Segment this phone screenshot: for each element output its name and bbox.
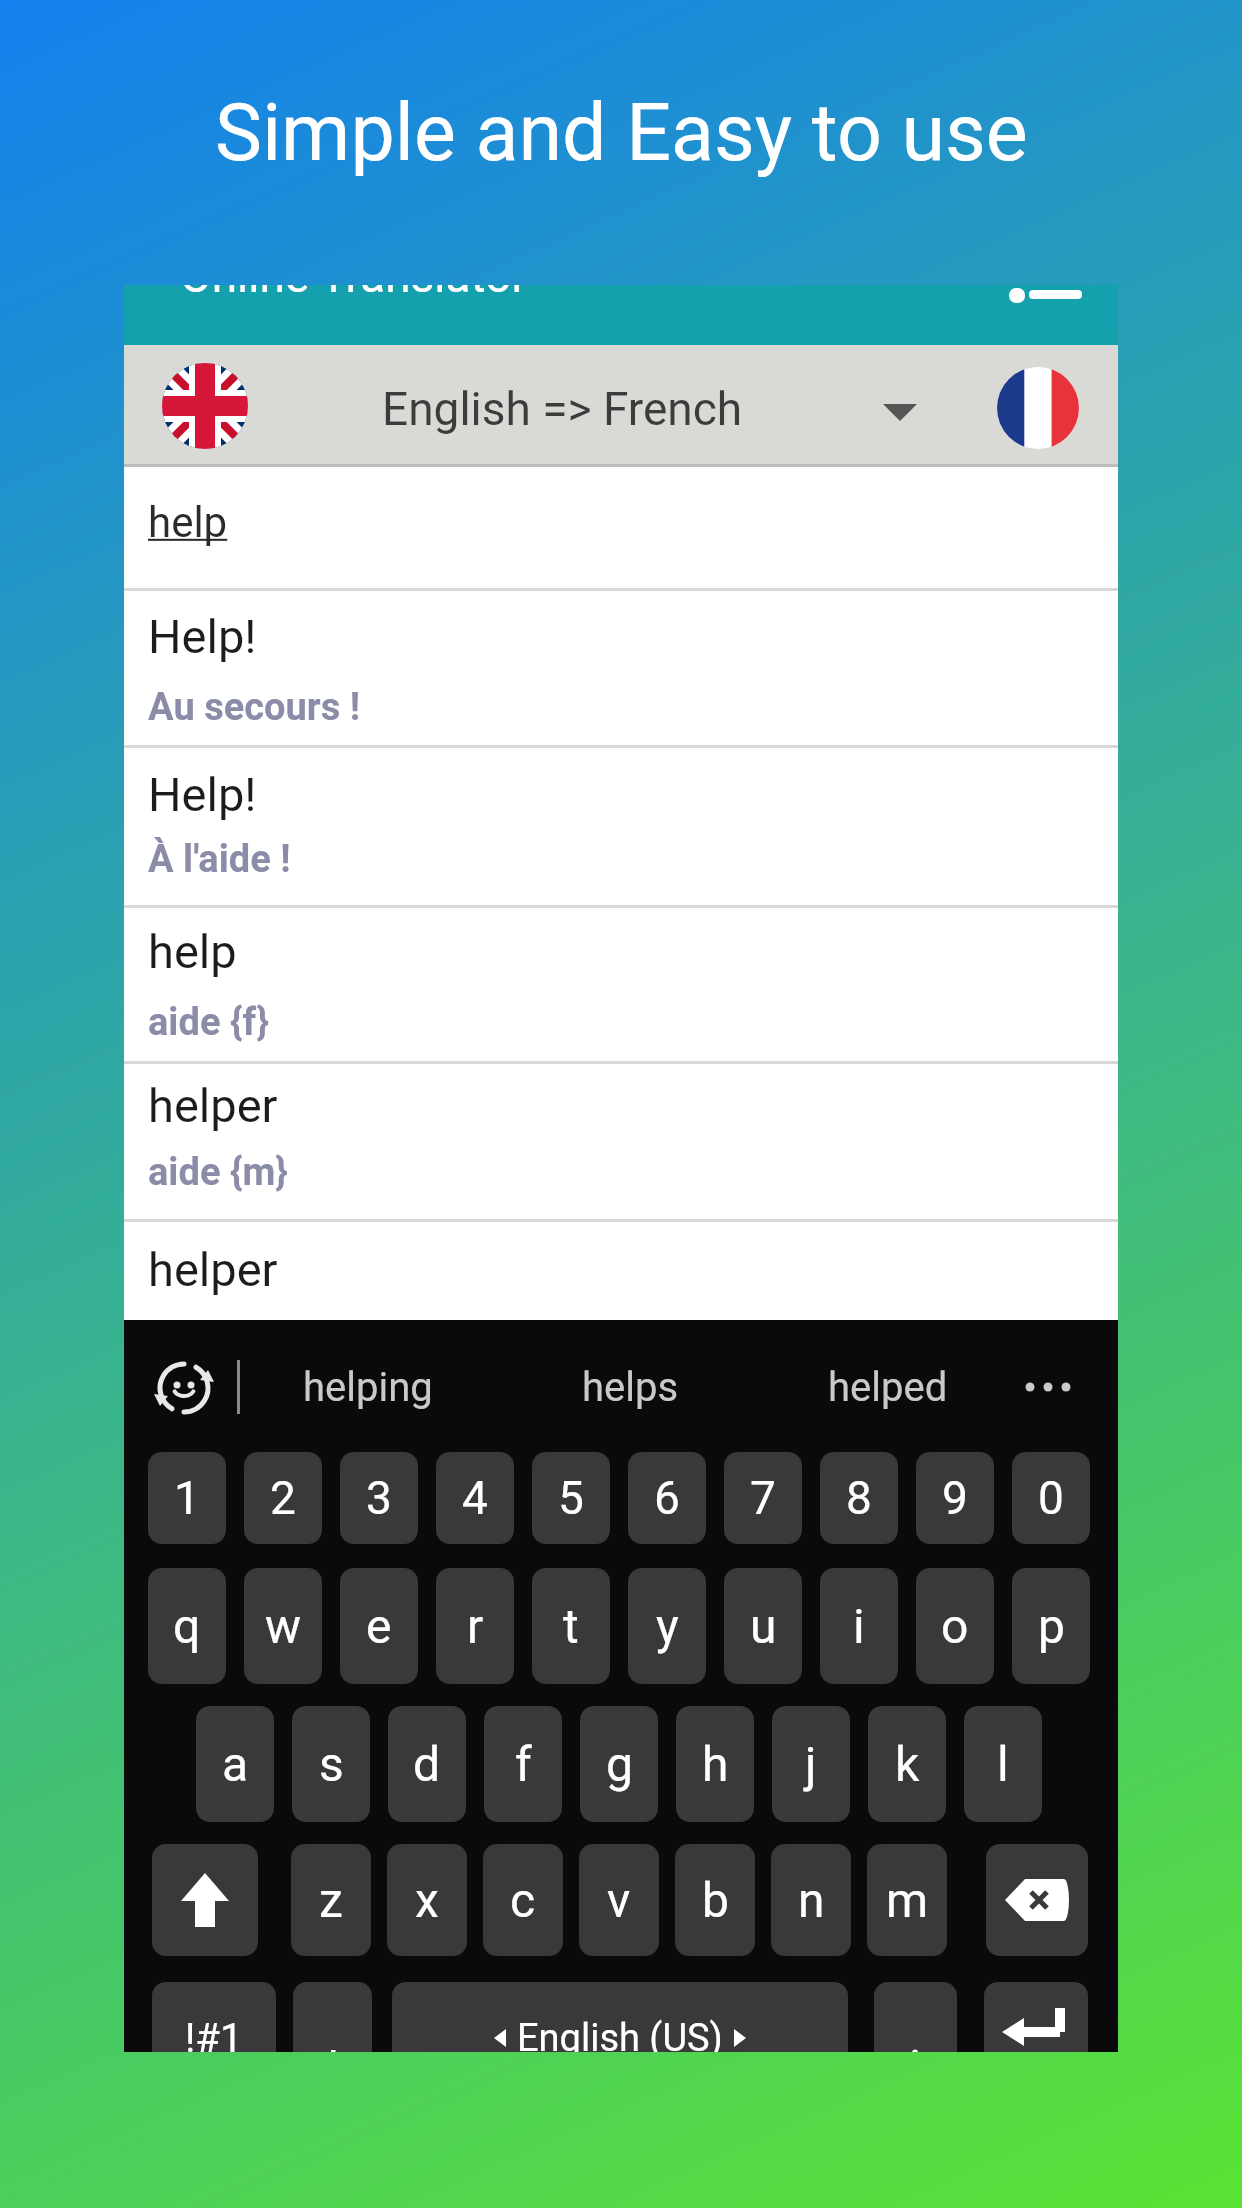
staticText: c: [510, 1872, 536, 1928]
button[interactable]: s: [292, 1706, 370, 1822]
staticText: aide {f}: [148, 1000, 269, 1045]
button[interactable]: .: [874, 1982, 957, 2052]
staticText: helping: [303, 1364, 433, 1411]
staticText: n: [798, 1872, 825, 1928]
staticText: 4: [462, 1471, 488, 1525]
button[interactable]: y: [628, 1568, 706, 1684]
button[interactable]: o: [916, 1568, 994, 1684]
button[interactable]: 9: [916, 1452, 994, 1544]
staticText: j: [805, 1736, 817, 1792]
button[interactable]: Online Translator: [124, 285, 1118, 345]
staticText: aide {m}: [148, 1150, 288, 1195]
staticText: 9: [942, 1471, 968, 1525]
button[interactable]: c: [483, 1844, 563, 1956]
staticText: l: [997, 1736, 1009, 1792]
button[interactable]: q: [148, 1568, 226, 1684]
staticText: b: [702, 1872, 729, 1928]
staticText: y: [656, 1598, 679, 1654]
staticText: 5: [558, 1471, 584, 1525]
button[interactable]: l: [964, 1706, 1042, 1822]
button[interactable]: b: [675, 1844, 755, 1956]
button[interactable]: 0: [1012, 1452, 1090, 1544]
staticText: .: [909, 2010, 922, 2052]
button[interactable]: j: [772, 1706, 850, 1822]
staticText: 0: [1038, 1471, 1064, 1525]
staticText: À l'aide !: [148, 837, 291, 882]
staticText: 3: [366, 1471, 392, 1525]
button[interactable]: 2: [244, 1452, 322, 1544]
button[interactable]: ,: [293, 1982, 372, 2052]
button[interactable]: f: [484, 1706, 562, 1822]
button[interactable]: 7: [724, 1452, 802, 1544]
staticText: i: [853, 1598, 865, 1654]
button[interactable]: x: [387, 1844, 467, 1956]
button[interactable]: e: [340, 1568, 418, 1684]
button[interactable]: 3: [340, 1452, 418, 1544]
button[interactable]: [392, 1982, 848, 2052]
staticText: ,: [328, 2010, 338, 2052]
button[interactable]: 4: [436, 1452, 514, 1544]
button[interactable]: v: [579, 1844, 659, 1956]
staticText: o: [941, 1598, 969, 1654]
staticText: 6: [654, 1471, 680, 1525]
staticText: helped: [828, 1364, 948, 1411]
staticText: w: [265, 1598, 302, 1654]
button[interactable]: helping: [124, 1287, 668, 1487]
button[interactable]: r: [436, 1568, 514, 1684]
staticText: f: [515, 1736, 532, 1792]
button[interactable]: g: [580, 1706, 658, 1822]
button[interactable]: 6: [628, 1452, 706, 1544]
staticText: g: [606, 1736, 633, 1792]
button[interactable]: [984, 1982, 1088, 2052]
staticText: x: [415, 1872, 439, 1928]
button[interactable]: !#1: [152, 1982, 276, 2052]
staticText: English => French: [382, 382, 743, 436]
button[interactable]: h: [676, 1706, 754, 1822]
staticText: Help!: [148, 609, 257, 664]
staticText: e: [366, 1598, 392, 1654]
staticText: 7: [750, 1471, 776, 1525]
staticText: Online Translator: [180, 285, 527, 303]
button[interactable]: n: [771, 1844, 851, 1956]
button[interactable]: k: [868, 1706, 946, 1822]
button[interactable]: m: [867, 1844, 947, 1956]
button[interactable]: English => French: [124, 345, 1118, 467]
staticText: help: [148, 924, 237, 979]
button[interactable]: a: [196, 1706, 274, 1822]
staticText: s: [319, 1736, 344, 1792]
staticText: m: [886, 1872, 929, 1928]
button[interactable]: helps: [330, 1287, 930, 1487]
button[interactable]: p: [1012, 1568, 1090, 1684]
staticText: t: [563, 1598, 579, 1654]
staticText: u: [750, 1598, 777, 1654]
staticText: 1: [174, 1471, 200, 1525]
staticText: h: [702, 1736, 729, 1792]
button[interactable]: 1: [148, 1452, 226, 1544]
button[interactable]: d: [388, 1706, 466, 1822]
staticText: p: [1038, 1598, 1065, 1654]
staticText: k: [895, 1736, 920, 1792]
button[interactable]: [986, 1844, 1088, 1956]
button[interactable]: w: [244, 1568, 322, 1684]
staticText: Simple and Easy to use: [215, 87, 1028, 180]
button[interactable]: 5: [532, 1452, 610, 1544]
button[interactable]: u: [724, 1568, 802, 1684]
button[interactable]: z: [291, 1844, 371, 1956]
staticText: 8: [846, 1471, 872, 1525]
staticText: 2: [270, 1471, 296, 1525]
staticText: q: [173, 1598, 201, 1654]
staticText: helper: [148, 1242, 278, 1297]
staticText: d: [413, 1736, 441, 1792]
staticText: a: [222, 1736, 249, 1792]
button[interactable]: [152, 1844, 258, 1956]
button[interactable]: t: [532, 1568, 610, 1684]
button[interactable]: i: [820, 1568, 898, 1684]
staticText: r: [467, 1598, 484, 1654]
staticText: helper: [148, 1078, 278, 1133]
staticText: v: [607, 1872, 631, 1928]
button[interactable]: helped: [588, 1287, 1118, 1487]
staticText: Au secours !: [148, 685, 361, 730]
button[interactable]: 8: [820, 1452, 898, 1544]
staticText: !#1: [185, 2015, 243, 2052]
staticText: help: [148, 498, 228, 547]
